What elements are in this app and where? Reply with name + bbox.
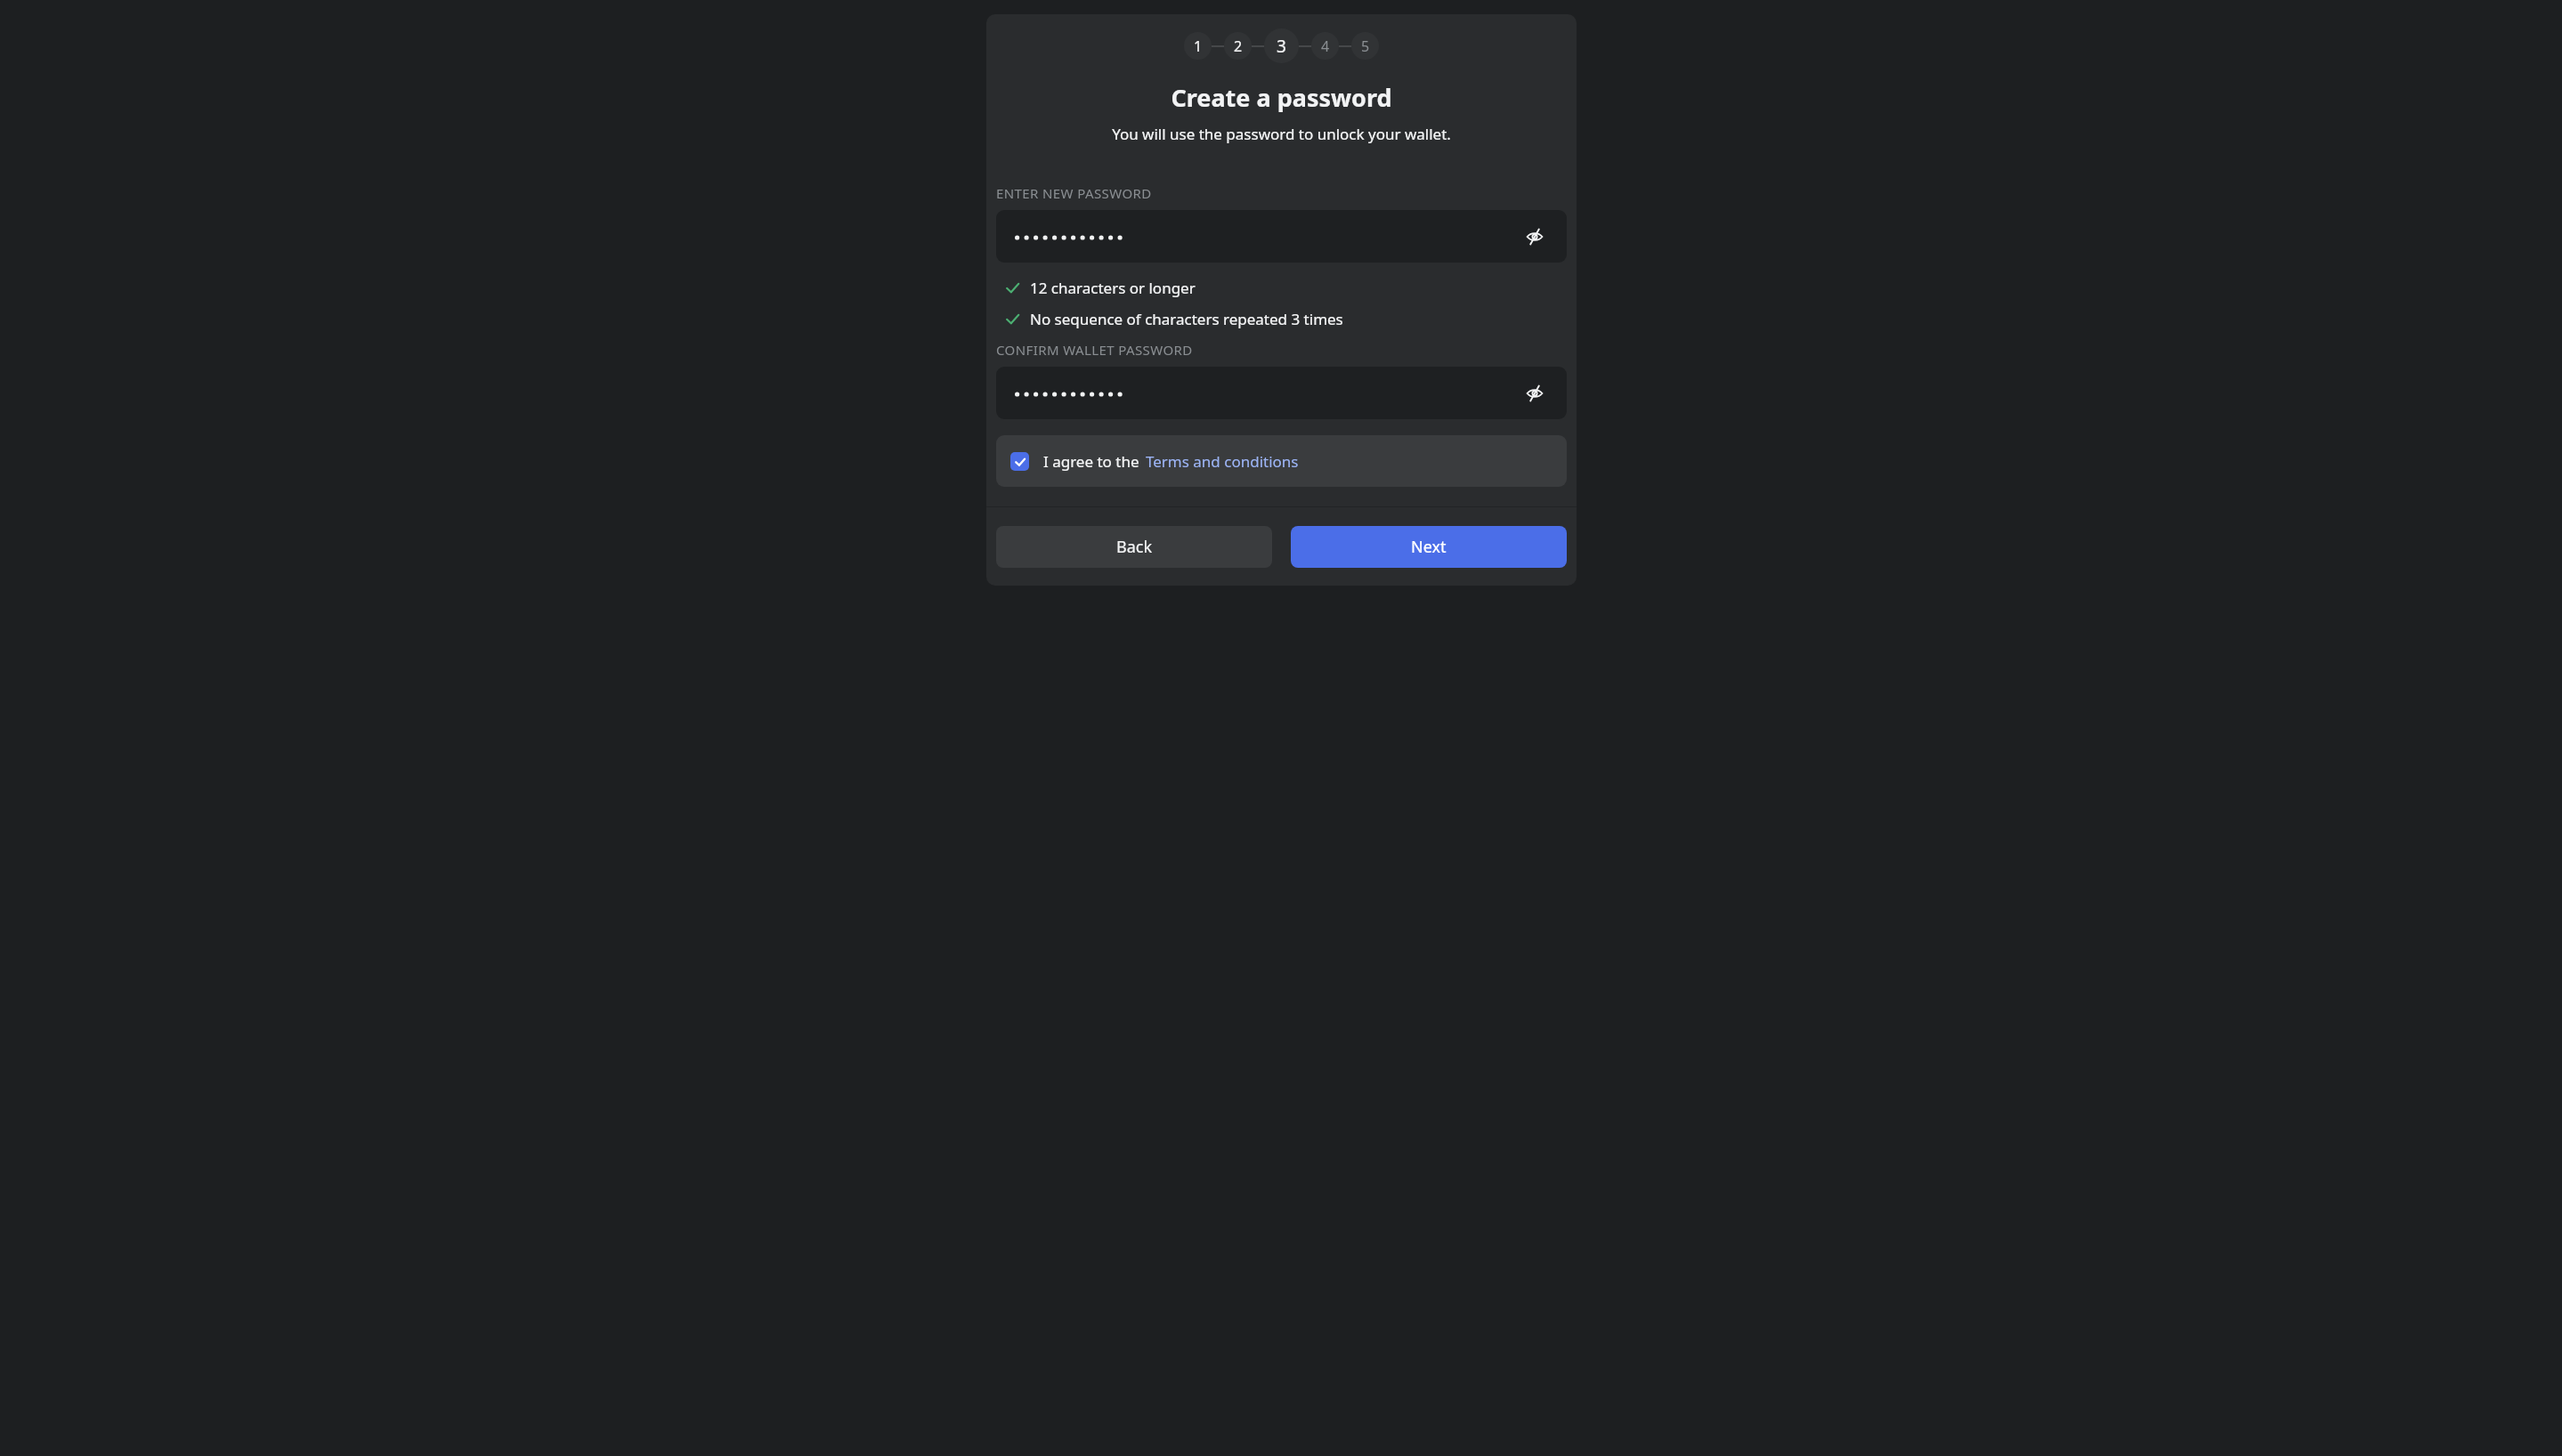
staticText: 1 <box>1194 36 1203 56</box>
button[interactable]: Hide password <box>1521 380 1548 407</box>
staticText: ENTER NEW PASSWORD <box>996 184 1152 202</box>
button[interactable]: Terms and conditions <box>1146 451 1299 472</box>
button[interactable]: 3 <box>1264 28 1299 63</box>
staticText: Create a password <box>986 81 1577 114</box>
button[interactable]: Next <box>1291 526 1567 568</box>
button[interactable]: Back <box>996 526 1272 568</box>
button[interactable]: 2 <box>1224 32 1252 60</box>
staticText: Back <box>1116 536 1153 558</box>
staticText: No sequence of characters repeated 3 tim… <box>1030 309 1343 329</box>
staticText: 12 characters or longer <box>1030 278 1196 298</box>
button[interactable]: 4 <box>1311 32 1339 60</box>
button[interactable]: Hide password <box>1521 223 1548 250</box>
staticText: Next <box>1411 536 1447 558</box>
button[interactable]: Hide password <box>996 210 1567 263</box>
staticText: You will use the password to unlock your… <box>986 124 1577 144</box>
button[interactable]: Hide password <box>996 367 1567 419</box>
staticText: 5 <box>1361 36 1370 56</box>
staticText: 4 <box>1321 36 1330 56</box>
staticText: CONFIRM WALLET PASSWORD <box>996 341 1193 359</box>
staticText: 2 <box>1234 36 1243 56</box>
button[interactable]: 1 <box>1184 32 1212 60</box>
button[interactable]: 5 <box>1351 32 1379 60</box>
staticText: I agree to the <box>1043 451 1139 472</box>
button[interactable]: I agree to the <box>996 435 1567 487</box>
staticText: Terms and conditions <box>1146 451 1299 472</box>
staticText: 3 <box>1277 35 1286 58</box>
